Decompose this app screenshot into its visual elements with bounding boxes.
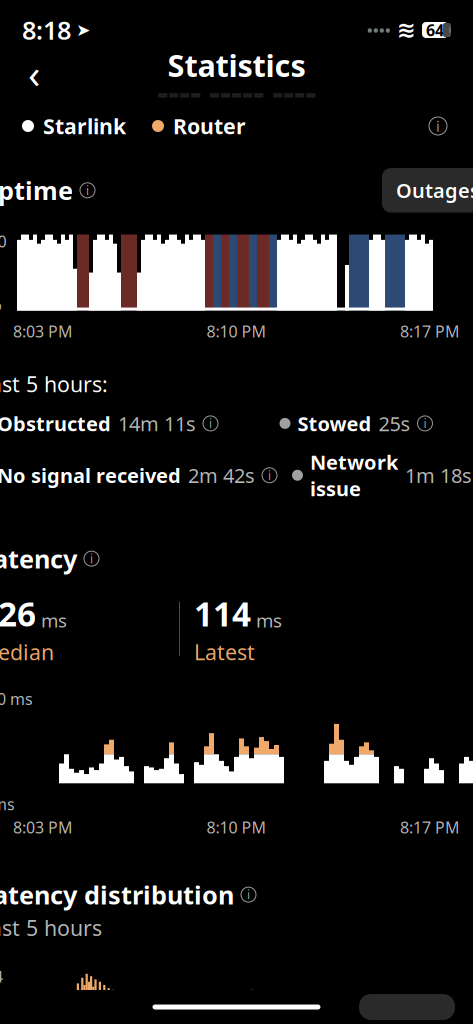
staticText: 8:10 PM (206, 816, 266, 838)
button[interactable]: Outages (382, 168, 473, 213)
staticText: No signal received (0, 462, 181, 489)
staticText: i (90, 551, 93, 567)
button[interactable]: Obstructed (0, 410, 218, 437)
staticText: ms (256, 608, 282, 633)
button[interactable]: Back (12, 51, 56, 95)
staticText: Median (0, 638, 54, 666)
staticText: ➤ (76, 20, 91, 40)
staticText: Uptime (0, 173, 73, 207)
staticText: Latest (194, 638, 255, 666)
staticText: 0% (0, 293, 1, 314)
button[interactable]: About latency (80, 547, 103, 570)
staticText: 126 (0, 591, 36, 636)
button[interactable]: About uptime (76, 179, 99, 202)
staticText: Last 5 hours: (0, 370, 108, 398)
staticText: 0 ms (0, 793, 15, 814)
staticText: Network issue (310, 449, 398, 502)
staticText: 1m 18s (405, 462, 472, 489)
staticText: ▬▬▬▬ ▬▬▬▬▬ ▬▬▬▬ (157, 88, 316, 101)
staticText: Latency (0, 542, 77, 575)
staticText: 100% (0, 231, 6, 273)
staticText: 114 (194, 591, 251, 636)
staticText: ‹ (28, 46, 40, 99)
staticText: Router (173, 112, 246, 140)
staticText: Last 5 hours (0, 913, 102, 942)
staticText: 25s (378, 410, 410, 437)
staticText: 1.4% (0, 966, 3, 1008)
staticText: Latency distribution (0, 878, 234, 911)
staticText: 14m 11s (118, 410, 196, 437)
staticText: Obstructed (0, 410, 111, 437)
staticText: i (423, 415, 426, 431)
staticText: 8:17 PM (400, 816, 460, 838)
staticText: Outages (396, 177, 473, 204)
button[interactable]: No signal received (0, 462, 277, 489)
staticText: 8:18 (22, 13, 71, 47)
button[interactable]: Stowed (279, 410, 432, 437)
staticText: •••• (367, 20, 391, 40)
staticText: 8:10 PM (206, 321, 266, 342)
button[interactable]: Network issue (292, 449, 473, 502)
button[interactable]: Router (152, 112, 246, 140)
button[interactable]: Starlink (22, 112, 126, 140)
staticText: Starlink (43, 112, 126, 140)
staticText: i (209, 415, 212, 431)
staticText: i (268, 467, 271, 483)
staticText: Stowed (297, 410, 371, 437)
staticText: i (86, 182, 89, 198)
staticText: ≋ (397, 17, 416, 43)
staticText: 250 ms (0, 688, 33, 709)
staticText: ms (41, 608, 67, 633)
button[interactable]: About latency distribution (237, 883, 260, 906)
staticText: 8:03 PM (13, 321, 73, 342)
staticText: 2m 42s (188, 462, 255, 489)
button[interactable]: About sources (425, 113, 451, 139)
staticText: i (436, 116, 440, 136)
staticText: 8:03 PM (13, 816, 73, 838)
staticText: 64 (426, 19, 444, 41)
staticText: Statistics (167, 45, 305, 85)
staticText: i (247, 887, 250, 902)
staticText: 8:17 PM (400, 321, 460, 342)
